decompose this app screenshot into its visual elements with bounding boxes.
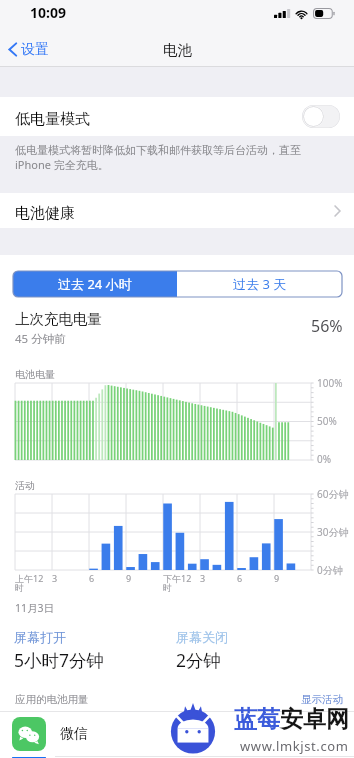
staticText: 10:09	[30, 3, 66, 22]
staticText: 6	[237, 572, 243, 584]
staticText: 上次充电电量	[15, 310, 102, 328]
staticText: 屏幕关闭	[176, 629, 228, 645]
staticText: 上午12 时	[15, 572, 44, 594]
staticText: 电池健康	[15, 204, 75, 223]
staticText: 低电量模式将暂时降低如下载和邮件获取等后台活动，直至 iPhone 完全充电。	[15, 143, 301, 172]
staticText: 56%	[311, 315, 343, 337]
button[interactable]: 设置	[0, 32, 57, 67]
button[interactable]: 过去 3 天	[177, 271, 342, 297]
button[interactable]: 低电量模式开关	[302, 105, 340, 128]
staticText: 活动	[15, 479, 35, 492]
staticText: 0%	[317, 452, 332, 466]
staticText: 5小时7分钟	[14, 648, 105, 672]
staticText: 安卓网	[280, 705, 349, 734]
staticText: 过去 3 天	[233, 275, 287, 293]
staticText: 9	[274, 572, 280, 584]
staticText: 低电量模式	[15, 110, 90, 129]
staticText: 50%	[317, 414, 337, 428]
staticText: 设置	[21, 41, 49, 59]
staticText: 30分钟	[317, 525, 349, 539]
staticText: 0分钟	[317, 563, 343, 577]
staticText: 应用的电池用量	[15, 693, 89, 706]
button[interactable]: 微信	[0, 712, 354, 756]
staticText: 3	[52, 572, 58, 584]
staticText: 屏幕打开	[14, 629, 66, 645]
staticText: 100%	[317, 376, 343, 390]
staticText: 下午12 时	[163, 572, 192, 594]
staticText: 6	[89, 572, 95, 584]
button[interactable]: 电池健康	[0, 193, 354, 228]
button[interactable]: 过去 24 小时	[13, 271, 177, 297]
staticText: 蓝莓	[234, 705, 280, 734]
staticText: 微信	[60, 725, 88, 743]
staticText: 电池	[163, 41, 192, 59]
staticText: 过去 24 小时	[58, 275, 132, 293]
staticText: 3	[200, 572, 206, 584]
staticText: www.lmkjst.com	[240, 737, 349, 755]
button[interactable]: 知	[0, 757, 354, 758]
staticText: 45 分钟前	[15, 331, 66, 347]
staticText: 电池电量	[15, 368, 55, 381]
button[interactable]: 显示活动	[301, 693, 354, 712]
staticText: 60分钟	[317, 487, 349, 501]
staticText: 9	[126, 572, 132, 584]
staticText: 11月3日	[15, 601, 55, 615]
staticText: 2分钟	[176, 648, 222, 672]
